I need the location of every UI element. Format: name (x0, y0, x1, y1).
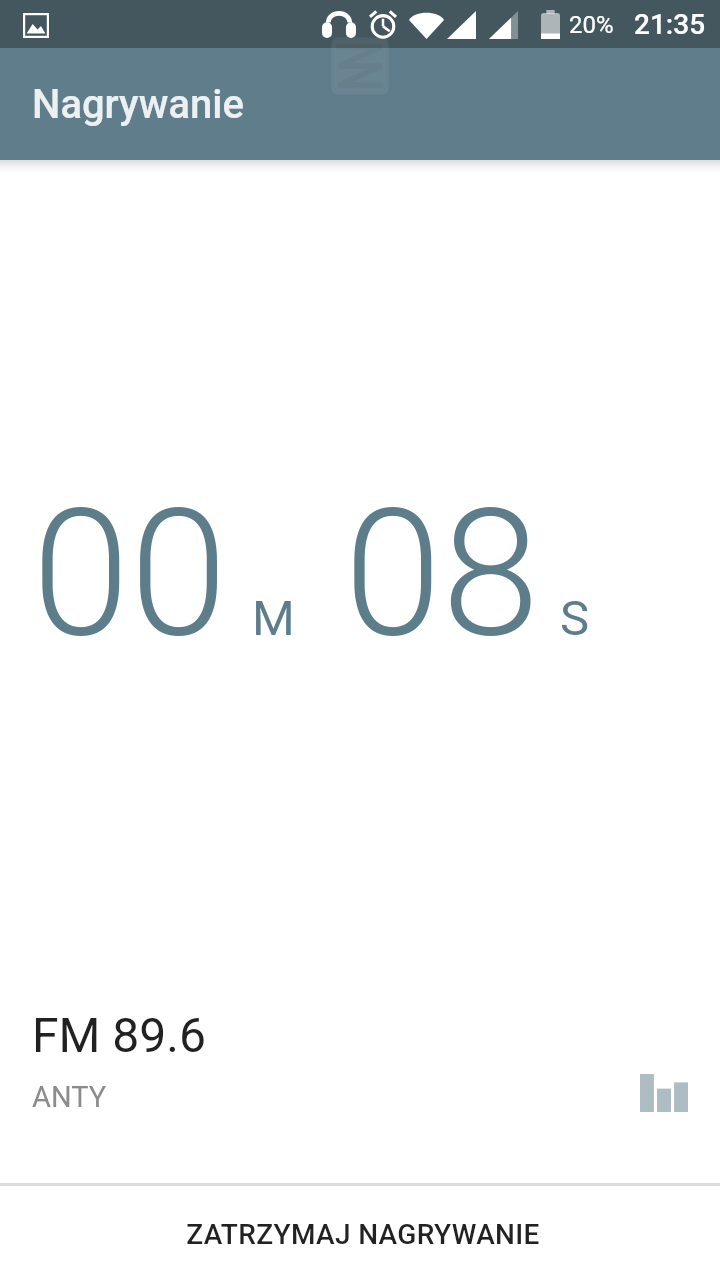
staticText: S (560, 590, 590, 647)
staticText: ZATRZYMAJ NAGRYWANIE (186, 1218, 540, 1251)
staticText: Nagrywanie (32, 81, 244, 128)
staticText: M (252, 590, 295, 647)
staticText: 21:35 (634, 8, 706, 41)
other: Signal strength (640, 1074, 688, 1112)
button[interactable]: FM 89.6 (0, 1011, 720, 1183)
other: Screenshot captured (23, 13, 49, 38)
staticText: FM 89.6 (32, 1007, 206, 1063)
staticText: ANTY (32, 1080, 107, 1114)
staticText: 00 (32, 471, 228, 677)
staticText: 08 (344, 471, 540, 677)
button[interactable]: ZATRZYMAJ NAGRYWANIE (0, 1186, 720, 1280)
staticText: 20% (569, 11, 614, 39)
